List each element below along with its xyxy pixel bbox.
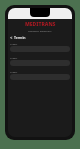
staticText: Termin	[14, 35, 26, 40]
staticText: <	[10, 35, 13, 40]
staticText: LABEL	[10, 42, 18, 45]
staticText: LABEL	[10, 56, 18, 59]
staticText: MEDITRANS	[25, 21, 56, 28]
staticText: LABEL	[10, 70, 18, 73]
staticText: transport medyczny	[28, 29, 52, 32]
